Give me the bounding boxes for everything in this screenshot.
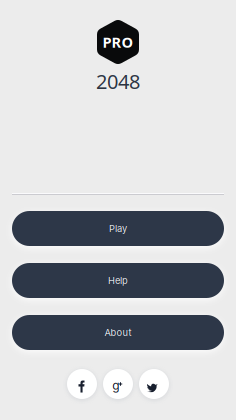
button[interactable]: Facebook [67,369,97,399]
button[interactable]: Play [12,211,224,246]
staticText: g [112,378,119,393]
button[interactable]: Twitter [139,369,169,399]
staticText: 2048 [96,68,140,95]
staticText: About [104,327,131,338]
button[interactable]: Help [12,263,224,298]
staticText: Play [109,223,127,234]
button[interactable]: About [12,315,224,350]
staticText: Help [108,275,128,286]
button[interactable]: Google Plus [103,369,133,399]
staticText: PRO [102,32,133,52]
